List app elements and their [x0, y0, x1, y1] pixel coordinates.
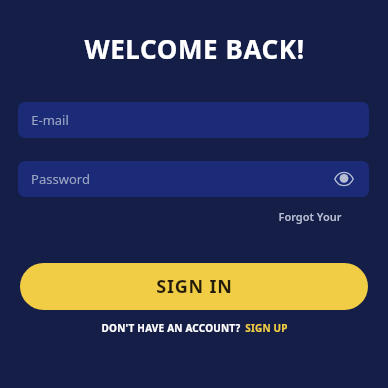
button[interactable]: Forgot Your Password? [250, 209, 370, 227]
button[interactable]: E-mail [18, 102, 369, 138]
staticText: E-mail [31, 111, 69, 129]
staticText: SIGN IN [156, 274, 233, 299]
staticText: SIGN UP [245, 321, 288, 335]
staticText: Password [31, 170, 90, 188]
button[interactable]: SIGN IN [20, 263, 368, 310]
button[interactable]: SIGN UP [241, 321, 288, 335]
staticText: Forgot Your Password? [250, 209, 370, 227]
staticText: WELCOME BACK! [84, 31, 305, 66]
staticText: DON'T HAVE AN ACCOUNT? [101, 321, 241, 335]
button[interactable]: Password [18, 161, 369, 197]
button[interactable]: Show password [332, 167, 356, 191]
